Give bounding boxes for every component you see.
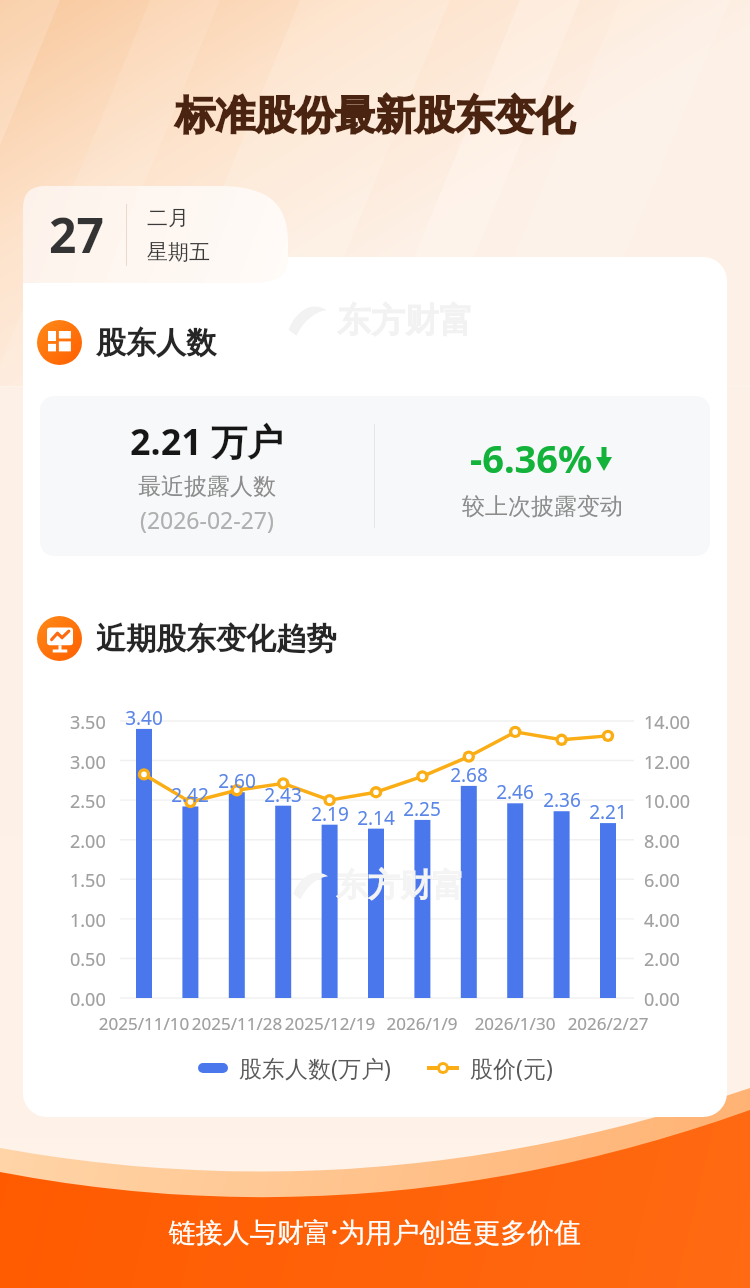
staticText: 2.21 万户 <box>130 417 284 466</box>
staticText: 1.50 <box>70 868 106 893</box>
staticText: 2.50 <box>70 789 106 814</box>
staticText: 2026/2/27 <box>562 1012 654 1035</box>
staticText: 标准股份最新股东变化 <box>0 90 750 140</box>
other: 近期股东变化趋势 <box>37 616 82 661</box>
staticText: 2026/1/30 <box>469 1012 561 1035</box>
staticText: 12.00 <box>644 750 691 775</box>
button[interactable]: 近期股东变化趋势 <box>37 616 336 661</box>
staticText: 3.40 <box>120 705 168 731</box>
staticText: 2.14 <box>352 805 400 831</box>
staticText: 1.00 <box>70 908 106 933</box>
staticText: 0.00 <box>70 987 106 1012</box>
staticText: 2025/11/10 <box>98 1012 190 1035</box>
staticText: 14.00 <box>644 710 691 735</box>
staticText: 2.36 <box>538 787 586 813</box>
staticText: 10.00 <box>644 789 691 814</box>
staticText: 链接人与财富·为用户创造更多价值 <box>0 1213 750 1250</box>
staticText: 2.43 <box>259 782 307 808</box>
staticText: 2.42 <box>166 782 214 808</box>
staticText: (2026-02-27) <box>140 504 274 535</box>
staticText: 2.46 <box>491 779 539 805</box>
staticText: 8.00 <box>644 829 680 854</box>
staticText: 股东人数(万户) <box>239 1052 391 1083</box>
staticText: 东方财富 <box>336 865 464 905</box>
staticText: 4.00 <box>644 908 680 933</box>
staticText: 2.00 <box>70 829 106 854</box>
staticText: 0.50 <box>70 947 106 972</box>
staticText: 股价(元) <box>470 1052 553 1083</box>
staticText: 二月 <box>147 205 189 231</box>
staticText: 东方财富 <box>337 299 473 342</box>
staticText: 股东人数 <box>96 324 216 362</box>
other: 股东人数 <box>37 320 82 365</box>
staticText: 2026/1/9 <box>376 1012 468 1035</box>
staticText: 2.25 <box>398 796 446 822</box>
staticText: 2.00 <box>644 947 680 972</box>
staticText: 6.00 <box>644 868 680 893</box>
staticText: 最近披露人数 <box>138 472 276 501</box>
staticText: 3.50 <box>70 710 106 735</box>
button[interactable]: 股东人数 <box>37 320 216 365</box>
staticText: 2.21 <box>584 799 632 825</box>
staticText: 27 <box>49 202 104 267</box>
button[interactable]: 股东人数(万户) <box>198 1052 391 1083</box>
staticText: 星期五 <box>147 239 210 265</box>
staticText: 较上次披露变动 <box>462 492 623 521</box>
staticText: 2.19 <box>306 801 354 827</box>
staticText: 2.60 <box>213 768 261 794</box>
staticText: 3.00 <box>70 750 106 775</box>
button[interactable]: 2.21 万户 <box>40 396 710 556</box>
staticText: 2025/11/28 <box>191 1012 283 1035</box>
staticText: -6.36% <box>470 432 593 484</box>
staticText: 0.00 <box>644 987 680 1012</box>
staticText: 2.68 <box>445 762 493 788</box>
button[interactable]: 股价(元) <box>427 1052 553 1083</box>
staticText: 2025/12/19 <box>284 1012 376 1035</box>
staticText: 近期股东变化趋势 <box>96 620 336 658</box>
